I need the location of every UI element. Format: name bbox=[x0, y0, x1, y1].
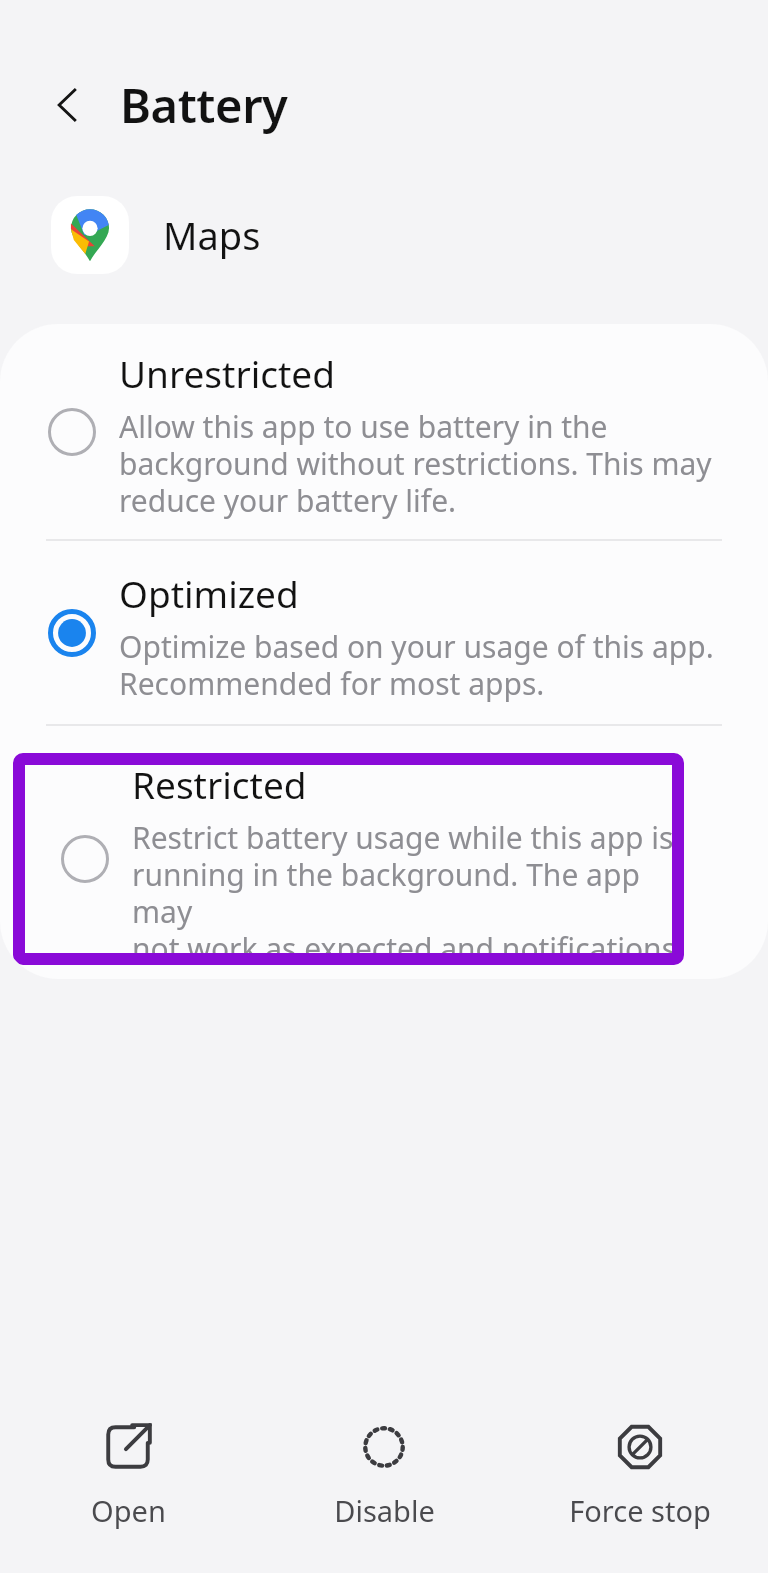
staticText: Unrestricted bbox=[119, 348, 335, 398]
button[interactable]: Unrestricted bbox=[0, 324, 768, 539]
button[interactable]: Disable bbox=[256, 1399, 512, 1549]
button[interactable]: Maps bbox=[0, 190, 768, 280]
staticText: Maps bbox=[163, 209, 261, 261]
staticText: Disable bbox=[334, 1491, 435, 1530]
staticText: Restrict battery usage while this app is… bbox=[132, 817, 684, 965]
button[interactable]: Open bbox=[0, 1399, 256, 1549]
staticText: Optimize based on your usage of this app… bbox=[119, 626, 714, 704]
button[interactable]: Restricted bbox=[13, 753, 684, 965]
staticText: Battery bbox=[120, 73, 288, 137]
button[interactable]: Optimized bbox=[0, 541, 768, 724]
button[interactable]: Back bbox=[40, 77, 96, 133]
staticText: Open bbox=[91, 1491, 166, 1530]
staticText: Optimized bbox=[119, 568, 299, 618]
staticText: Restricted bbox=[132, 759, 307, 809]
button[interactable]: Force stop bbox=[512, 1399, 768, 1549]
staticText: Allow this app to use battery in the bac… bbox=[119, 406, 712, 521]
staticText: Force stop bbox=[569, 1491, 711, 1530]
